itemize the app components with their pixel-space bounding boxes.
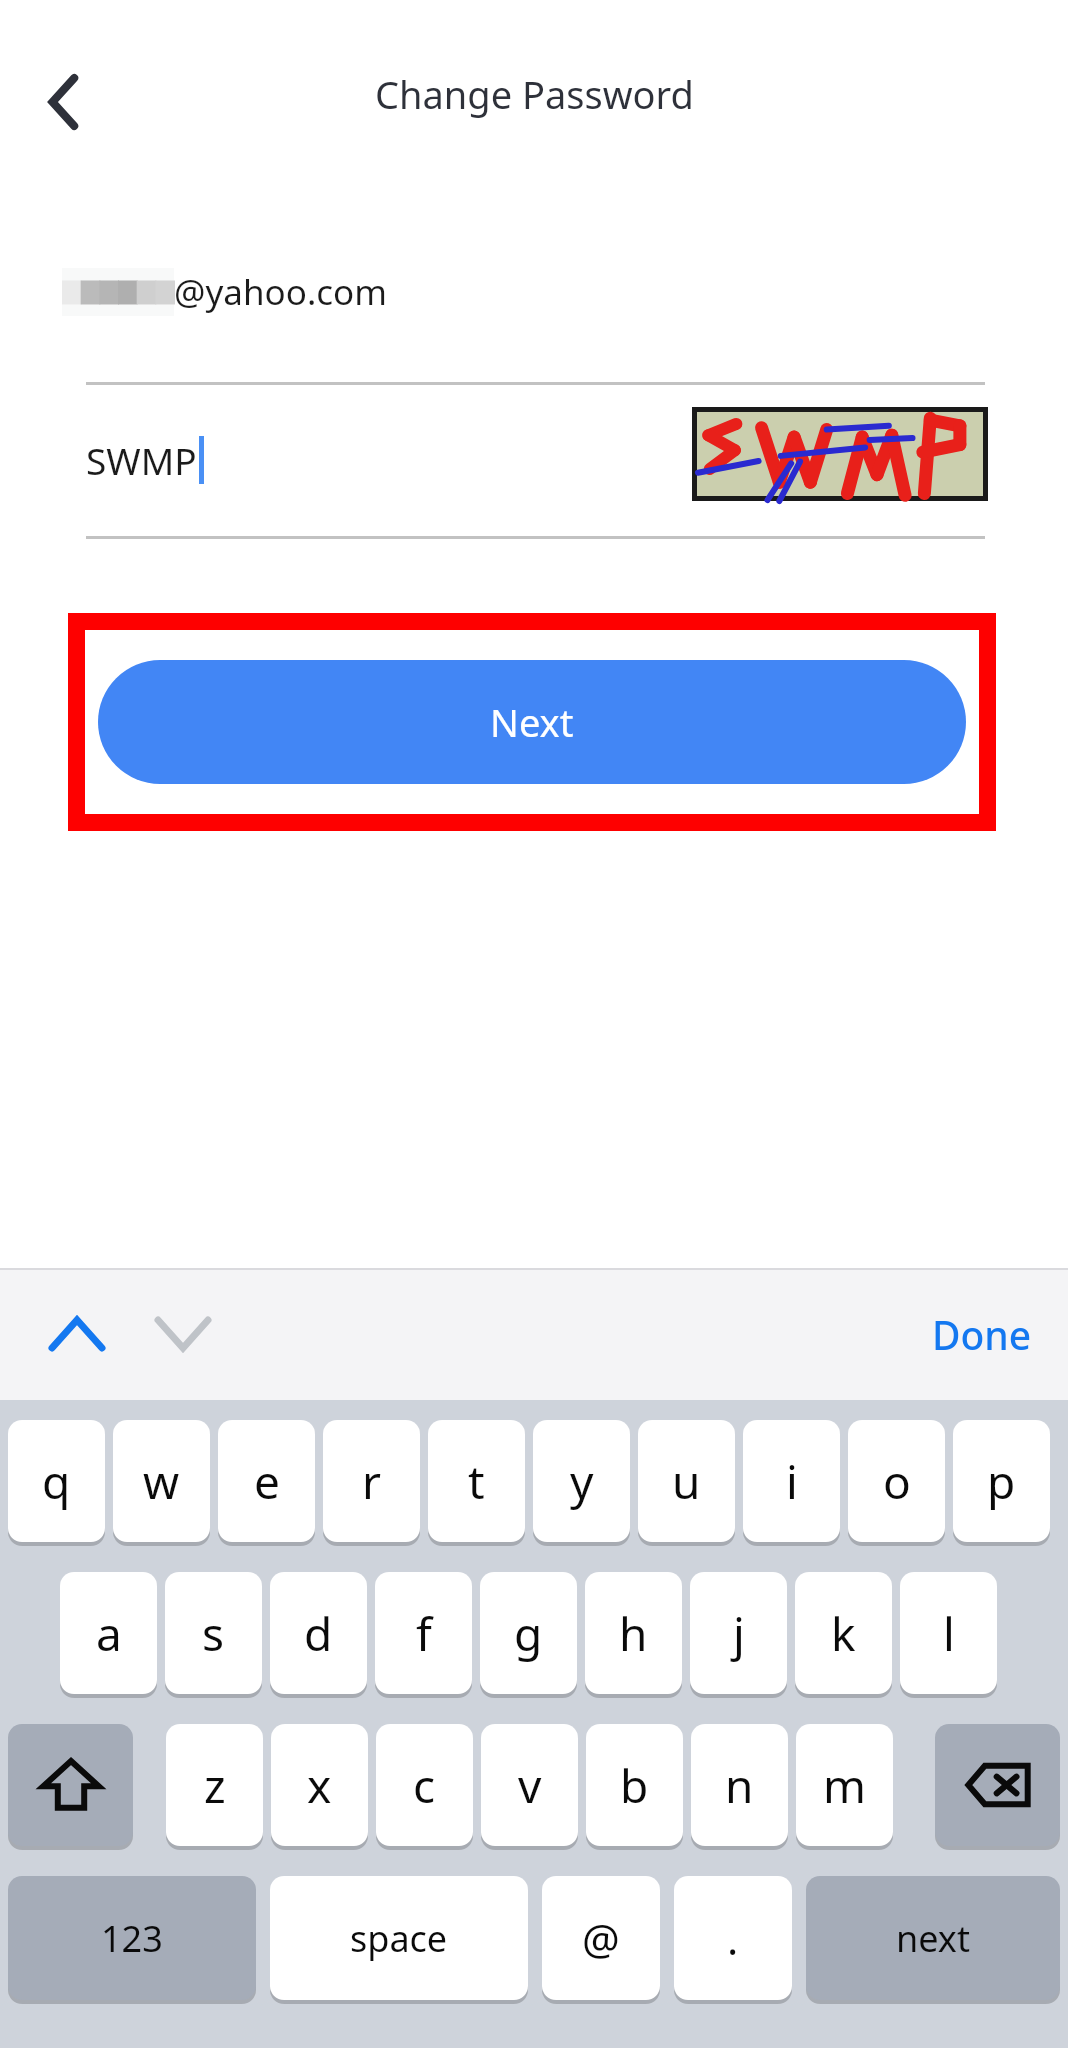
button[interactable]: @ [542,1876,660,2000]
button[interactable]: v [481,1724,578,1846]
staticText: space [350,1914,448,1963]
button[interactable]: c [376,1724,473,1846]
staticText: next [896,1914,970,1963]
button[interactable]: next [806,1876,1060,2000]
staticText: c [413,1754,436,1817]
staticText: . [727,1910,739,1967]
button[interactable]: s [165,1572,262,1694]
button[interactable]: Shift [8,1724,133,1846]
button[interactable]: . [674,1876,792,2000]
staticText: Change Password [375,68,694,120]
button[interactable]: j [690,1572,787,1694]
button[interactable]: n [691,1724,788,1846]
button[interactable]: d [270,1572,367,1694]
staticText: e [254,1450,280,1513]
button[interactable]: q [8,1420,105,1542]
staticText: x [307,1754,332,1817]
button[interactable]: Back [24,56,104,148]
staticText: @ [582,1910,620,1967]
button[interactable]: u [638,1420,735,1542]
staticText: b [620,1754,649,1817]
staticText: j [733,1602,745,1665]
staticText: u [672,1450,701,1513]
button[interactable]: a [60,1572,157,1694]
staticText: d [304,1602,333,1665]
staticText: s [202,1602,225,1665]
staticText: p [987,1450,1016,1513]
staticText: y [570,1450,594,1513]
button[interactable]: space [270,1876,528,2000]
staticText: q [42,1450,71,1513]
button[interactable]: t [428,1420,525,1542]
button[interactable]: l [900,1572,997,1694]
staticText: w [143,1450,180,1513]
staticText: r [362,1450,381,1513]
button[interactable]: Next field [140,1294,226,1374]
staticText: m [823,1754,867,1817]
button[interactable]: SWMP [86,386,646,534]
staticText: k [831,1602,856,1665]
button[interactable]: w [113,1420,210,1542]
staticText: n [725,1754,754,1817]
staticText: l [943,1602,955,1665]
staticText: o [883,1450,911,1513]
button[interactable]: x [271,1724,368,1846]
button[interactable]: h [585,1572,682,1694]
staticText: a [96,1602,122,1665]
staticText: t [468,1450,485,1513]
button[interactable]: e [218,1420,315,1542]
staticText: h [619,1602,648,1665]
button[interactable]: f [375,1572,472,1694]
button[interactable]: g [480,1572,577,1694]
button[interactable]: b [586,1724,683,1846]
staticText: @yahoo.com [174,268,388,316]
button[interactable]: i [743,1420,840,1542]
button[interactable]: m [796,1724,893,1846]
staticText: SWMP [86,435,197,485]
staticText: Next [490,696,574,748]
button[interactable]: p [953,1420,1050,1542]
staticText: Done [932,1308,1032,1361]
button[interactable]: Done [932,1308,1032,1361]
staticText: g [514,1602,543,1665]
staticText: z [204,1754,226,1817]
staticText: v [518,1754,542,1817]
button[interactable]: Next [98,660,966,784]
button[interactable]: 123 [8,1876,256,2000]
button[interactable]: Previous field [34,1294,120,1374]
staticText: 123 [101,1914,163,1963]
staticText: f [416,1602,432,1665]
button[interactable]: y [533,1420,630,1542]
button[interactable]: k [795,1572,892,1694]
button[interactable]: o [848,1420,945,1542]
button[interactable]: Backspace [935,1724,1060,1846]
button[interactable]: z [166,1724,263,1846]
staticText: i [786,1450,798,1513]
button[interactable]: r [323,1420,420,1542]
